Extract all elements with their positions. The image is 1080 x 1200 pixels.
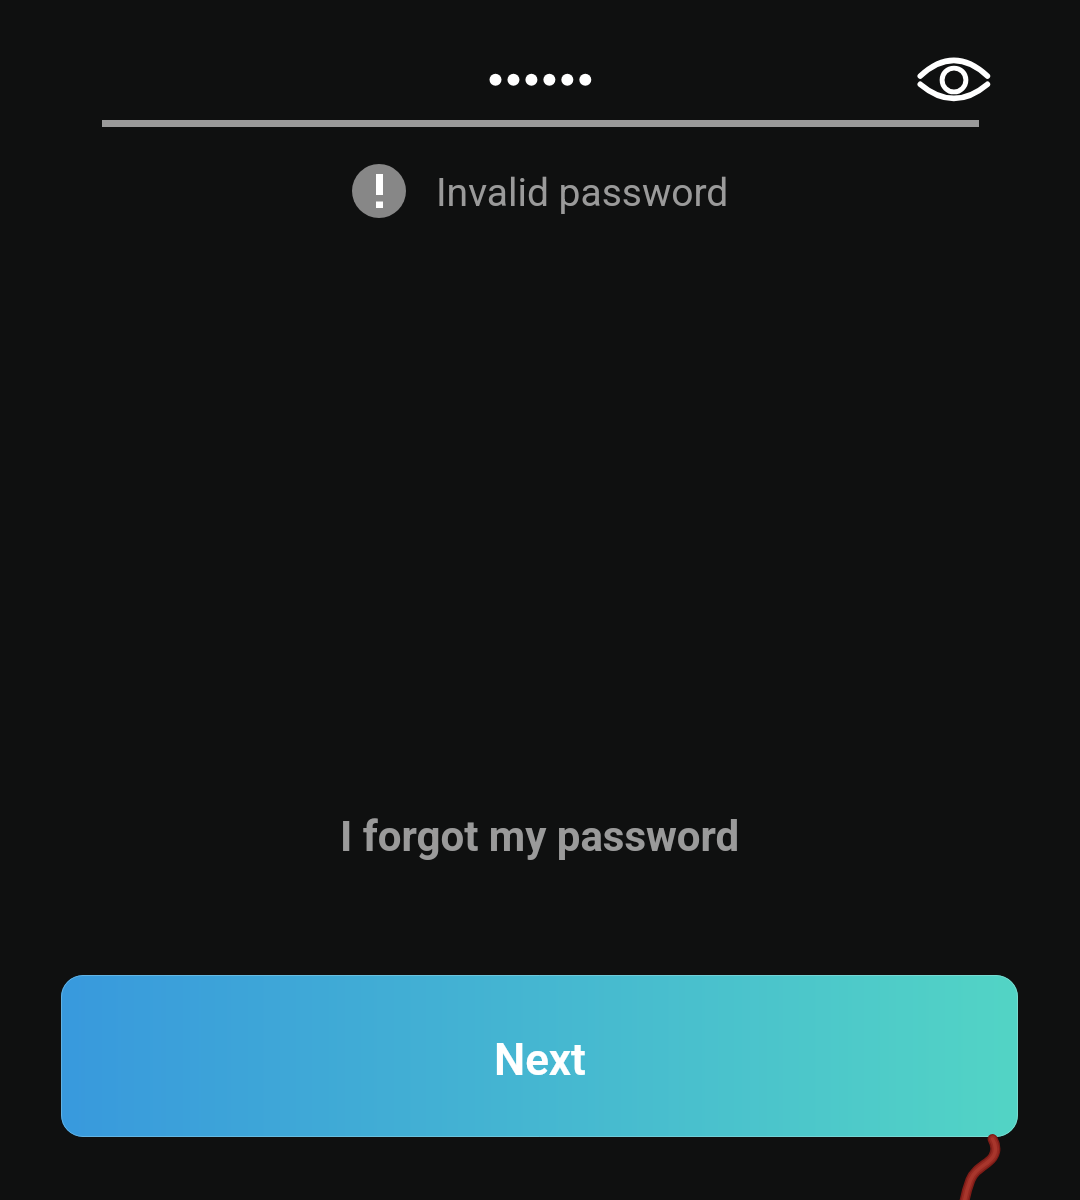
button[interactable]: Show password [904,30,1004,130]
button[interactable]: I forgot my password [0,806,1080,866]
button[interactable]: Next [61,975,1018,1137]
staticText: Next [494,1034,586,1086]
staticText: Invalid password [436,170,729,216]
staticText: I forgot my password [340,812,740,861]
